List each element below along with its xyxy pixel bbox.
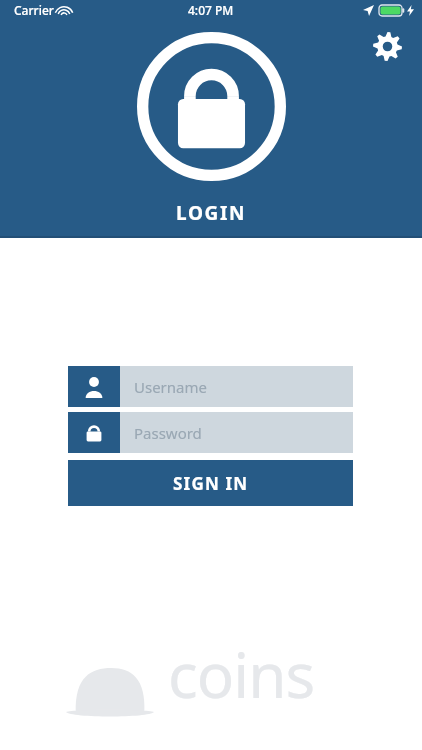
button[interactable]: Password [68, 412, 353, 453]
staticText: LOGIN [176, 200, 246, 226]
button[interactable]: SIGN IN [68, 460, 353, 506]
staticText: Username [134, 377, 207, 397]
staticText: coins [168, 632, 315, 716]
button[interactable]: Settings [367, 26, 407, 66]
staticText: 4:07 PM [188, 2, 234, 18]
staticText: Password [134, 423, 202, 443]
button[interactable]: Username [68, 366, 353, 407]
staticText: Carrier [14, 2, 54, 18]
staticText: SIGN IN [173, 472, 249, 495]
